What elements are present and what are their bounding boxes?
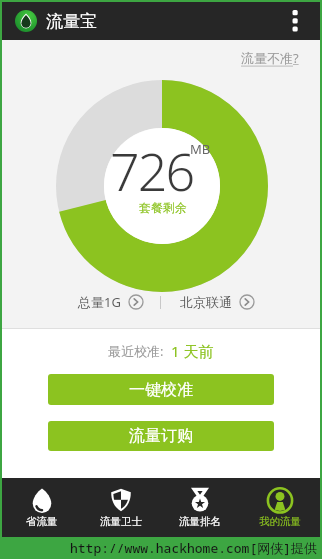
staticText: 726: [110, 135, 194, 206]
staticText: 我的流量: [259, 515, 301, 528]
button[interactable]: 总量1G: [78, 293, 144, 311]
button[interactable]: 流量不准?: [241, 49, 299, 67]
button[interactable]: 我的流量: [240, 478, 320, 537]
staticText: 流量订购: [129, 426, 193, 446]
button[interactable]: 流量排名: [160, 478, 240, 537]
staticText: 北京联通: [180, 294, 232, 310]
staticText: 流量卫士: [100, 515, 142, 528]
staticText: 1 天前: [171, 341, 214, 361]
button[interactable]: [278, 2, 312, 40]
staticText: 流量宝: [46, 11, 97, 32]
button[interactable]: 一键校准: [48, 374, 274, 405]
button[interactable]: 流量卫士: [81, 478, 160, 537]
staticText: 流量不准?: [241, 49, 299, 67]
staticText: 一键校准: [129, 380, 193, 400]
staticText: 最近校准:: [108, 342, 164, 360]
staticText: 总量1G: [78, 293, 121, 311]
button[interactable]: 北京联通: [180, 294, 255, 310]
staticText: MB: [190, 140, 211, 158]
staticText: 套餐剩余: [139, 200, 187, 215]
button[interactable]: 流量订购: [48, 421, 274, 451]
button[interactable]: 省流量: [2, 478, 81, 537]
staticText: 流量排名: [179, 515, 221, 528]
staticText: 省流量: [26, 515, 58, 528]
staticText: http://www.hackhome.com[网侠]提供: [70, 539, 318, 557]
